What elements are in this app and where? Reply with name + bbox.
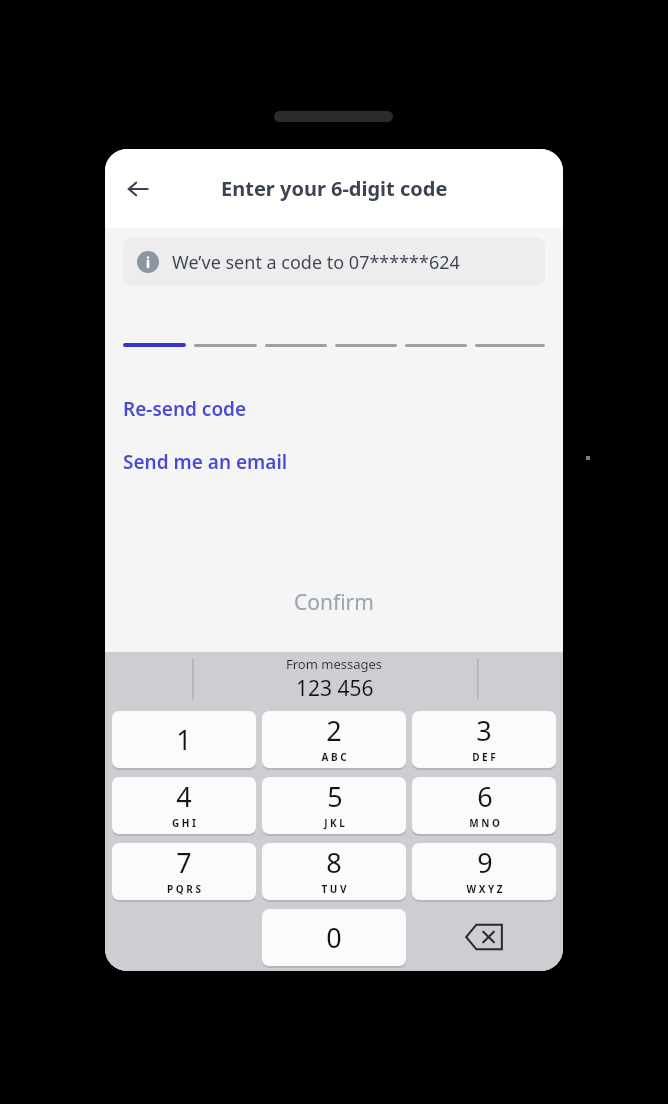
button[interactable]: 5 [262,777,406,834]
staticText: 3 [476,712,492,749]
staticText: We’ve sent a code to 07******624 [172,250,460,275]
staticText: G H I [172,816,196,830]
button[interactable]: Re-send code [123,396,247,422]
button[interactable]: We’ve sent a code to 07******624 [123,238,545,286]
button[interactable] [123,340,545,350]
staticText: 2 [326,712,342,749]
staticText: P Q R S [167,882,201,896]
button[interactable]: Back [114,165,162,213]
staticText: 123 456 [296,674,374,703]
staticText: 4 [176,778,192,815]
button[interactable]: 0 [262,909,406,966]
button[interactable]: Confirm [105,574,563,630]
button[interactable]: 6 [412,777,556,834]
button[interactable]: 7 [112,843,256,900]
button[interactable]: Backspace [410,904,558,970]
button[interactable]: Send me an email [123,449,288,475]
staticText: A B C [321,750,347,764]
button[interactable]: 2 [262,711,406,768]
staticText: 6 [477,778,493,815]
staticText: Confirm [294,588,374,617]
staticText: M N O [469,816,500,830]
staticText: From messages [286,655,383,673]
button[interactable]: From messages [286,655,383,703]
staticText: J K L [324,816,345,830]
button[interactable]: 8 [262,843,406,900]
staticText: 7 [176,844,192,881]
button[interactable]: 9 [412,843,556,900]
staticText: 9 [477,844,493,881]
staticText: Re-send code [123,396,247,422]
staticText: T U V [321,882,347,896]
staticText: 1 [176,721,192,758]
staticText: Enter your 6-digit code [221,175,448,202]
button[interactable]: 4 [112,777,256,834]
staticText: D E F [472,750,496,764]
staticText: W X Y Z [466,882,503,896]
button[interactable]: 1 [112,711,256,768]
staticText: 0 [326,919,342,956]
staticText: Send me an email [123,449,288,475]
button[interactable]: 3 [412,711,556,768]
staticText: 5 [327,778,343,815]
staticText: 8 [326,844,342,881]
